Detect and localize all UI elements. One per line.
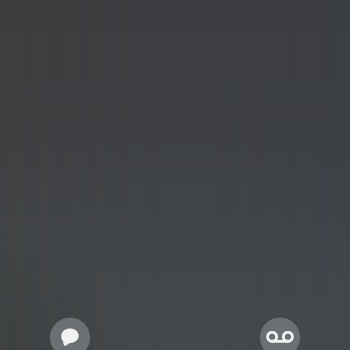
button[interactable]: Message <box>50 318 90 350</box>
button[interactable]: Voicemail <box>260 318 300 350</box>
